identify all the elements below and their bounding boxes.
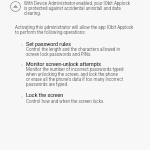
staticText: screen lock passwords and PINs.: [26, 52, 92, 57]
staticText: is protected against accidental uninstal…: [24, 6, 121, 11]
staticText: Activating this administrator will allow…: [15, 25, 134, 30]
staticText: With Device Administrator enabled, your …: [24, 1, 130, 6]
staticText: Monitor screen-unlock attempts: [26, 61, 102, 67]
button[interactable]: Collapse details: [10, 1, 21, 12]
staticText: or erase all the phone's data if too man…: [26, 77, 123, 82]
staticText: when unlocking the screen, and lock the …: [26, 72, 118, 77]
staticText: Monitor the number of incorrect password…: [26, 67, 124, 72]
staticText: Lock the screen: [26, 92, 64, 98]
staticText: passwords are typed.: [26, 82, 69, 87]
staticText: Set password rules: [26, 41, 71, 47]
staticText: clearing.: [24, 11, 41, 16]
staticText: Control how and when the screen locks.: [26, 99, 105, 104]
staticText: to perform the following operations:: [15, 30, 86, 35]
staticText: Control the length and the characters al…: [26, 47, 120, 52]
